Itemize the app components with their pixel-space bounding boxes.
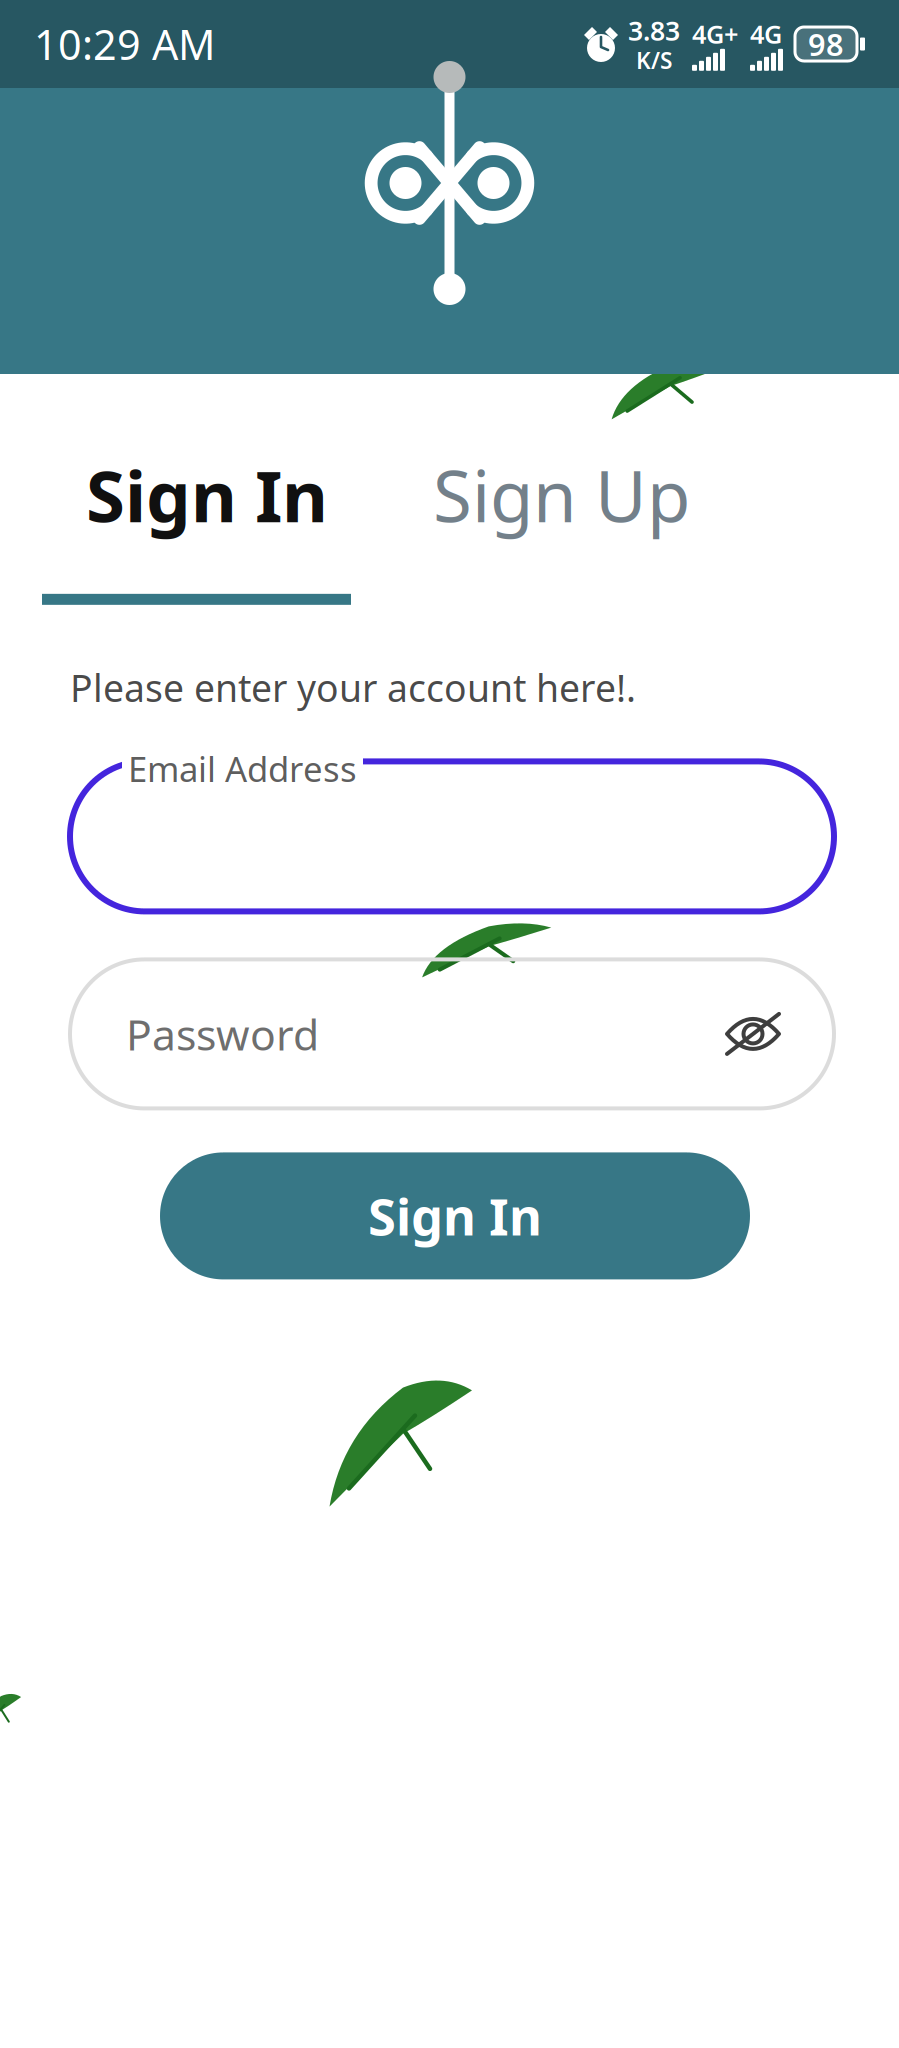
button[interactable]: Sign In	[42, 448, 351, 605]
staticText: K/S	[636, 45, 672, 75]
button[interactable]: Sign Up	[351, 448, 690, 542]
staticText: Sign In	[86, 448, 328, 542]
staticText: Sign In	[368, 1182, 542, 1250]
button[interactable]: Sign In	[160, 1152, 750, 1279]
staticText: 98	[808, 24, 844, 64]
staticText: 4G	[750, 17, 782, 51]
staticText: Password	[126, 1006, 319, 1062]
staticText: 3.83	[628, 13, 680, 48]
staticText: Sign Up	[433, 448, 690, 542]
staticText: 4G+	[692, 17, 738, 51]
staticText: 10:29 AM	[34, 17, 215, 71]
staticText: Please enter your account here!.	[70, 663, 636, 712]
staticText: Email Address	[128, 745, 357, 791]
